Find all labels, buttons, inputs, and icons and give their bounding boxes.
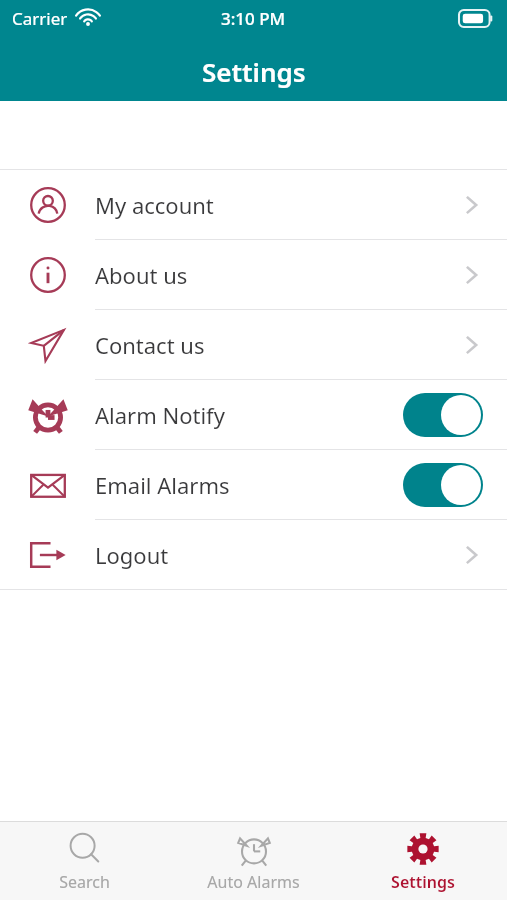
button[interactable]: Search — [0, 822, 169, 900]
button[interactable]: Email Alarms toggle — [403, 463, 483, 507]
button[interactable]: Contact us — [0, 310, 507, 379]
button[interactable]: My account — [0, 170, 507, 239]
button[interactable]: Logout — [0, 520, 507, 589]
staticText: Email Alarms — [95, 470, 403, 500]
button[interactable]: Settings — [338, 822, 507, 900]
button[interactable]: Alarm Notify toggle — [403, 393, 483, 437]
staticText: 3:10 PM — [221, 7, 286, 30]
button[interactable]: About us — [0, 240, 507, 309]
staticText: Search — [59, 871, 110, 893]
staticText: Settings — [391, 871, 455, 893]
staticText: Alarm Notify — [95, 400, 403, 430]
staticText: Auto Alarms — [207, 871, 300, 893]
staticText: Carrier — [12, 7, 68, 30]
button[interactable]: Alarm Notify — [0, 380, 507, 449]
staticText: Settings — [202, 54, 306, 89]
button[interactable]: Auto Alarms — [169, 822, 338, 900]
staticText: Contact us — [95, 330, 459, 360]
staticText: About us — [95, 260, 459, 290]
staticText: My account — [95, 190, 459, 220]
button[interactable]: Email Alarms — [0, 450, 507, 519]
staticText: Logout — [95, 540, 459, 570]
